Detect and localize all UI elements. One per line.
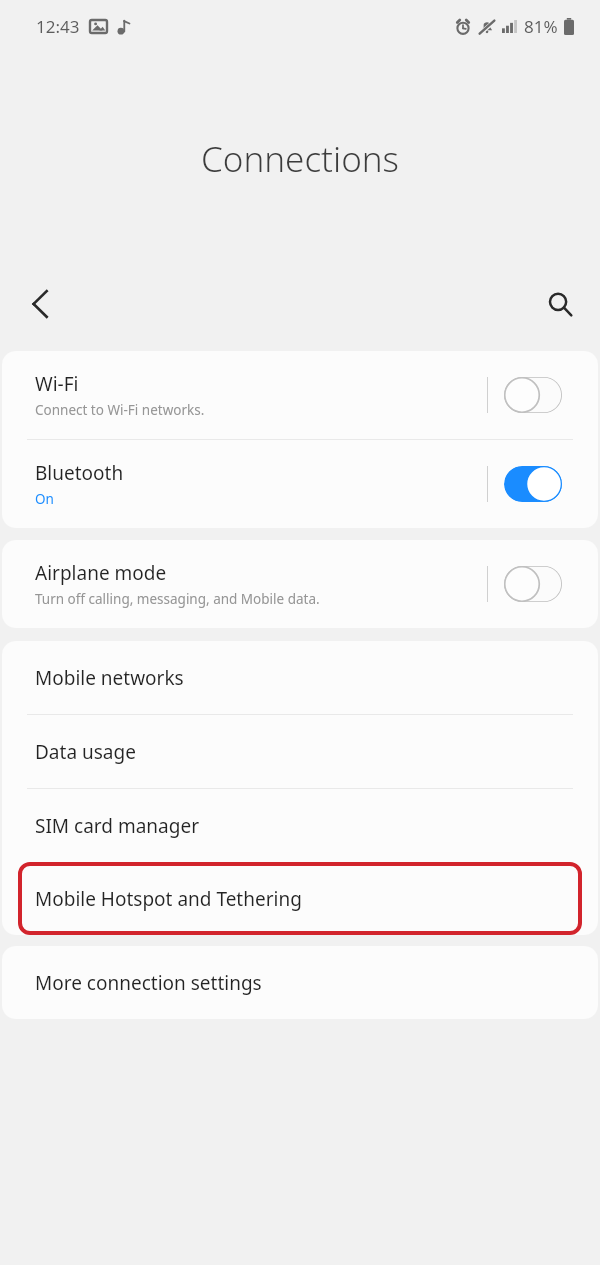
staticText: SIM card manager [35, 813, 199, 839]
staticText: Connections [201, 135, 399, 183]
button[interactable]: Wi-Fi [2, 351, 598, 439]
staticText: Wi-Fi [35, 371, 79, 397]
button[interactable]: Bluetooth [2, 440, 598, 528]
staticText: Data usage [35, 739, 136, 765]
button[interactable]: Navigate up [16, 280, 64, 328]
staticText: Connect to Wi-Fi networks. [35, 401, 205, 419]
staticText: On [35, 490, 54, 508]
staticText: Airplane mode [35, 560, 167, 586]
button[interactable]: Data usage [2, 715, 598, 788]
button[interactable]: On [504, 466, 562, 502]
button[interactable]: SIM card manager [2, 789, 598, 862]
staticText: Mobile networks [35, 665, 184, 691]
button[interactable]: Mobile Hotspot and Tethering [18, 862, 582, 935]
button[interactable]: Mobile networks [2, 641, 598, 714]
button[interactable]: Search [534, 278, 586, 330]
button[interactable]: Airplane mode [2, 540, 598, 628]
staticText: Bluetooth [35, 460, 124, 486]
button[interactable]: More connection settings [2, 946, 598, 1019]
staticText: More connection settings [35, 970, 262, 996]
staticText: Mobile Hotspot and Tethering [35, 886, 302, 912]
button[interactable]: Off [504, 566, 562, 602]
staticText: 12:43 [36, 15, 80, 38]
staticText: 81% [524, 15, 558, 38]
button[interactable]: Off [504, 377, 562, 413]
staticText: Turn off calling, messaging, and Mobile … [35, 590, 320, 608]
